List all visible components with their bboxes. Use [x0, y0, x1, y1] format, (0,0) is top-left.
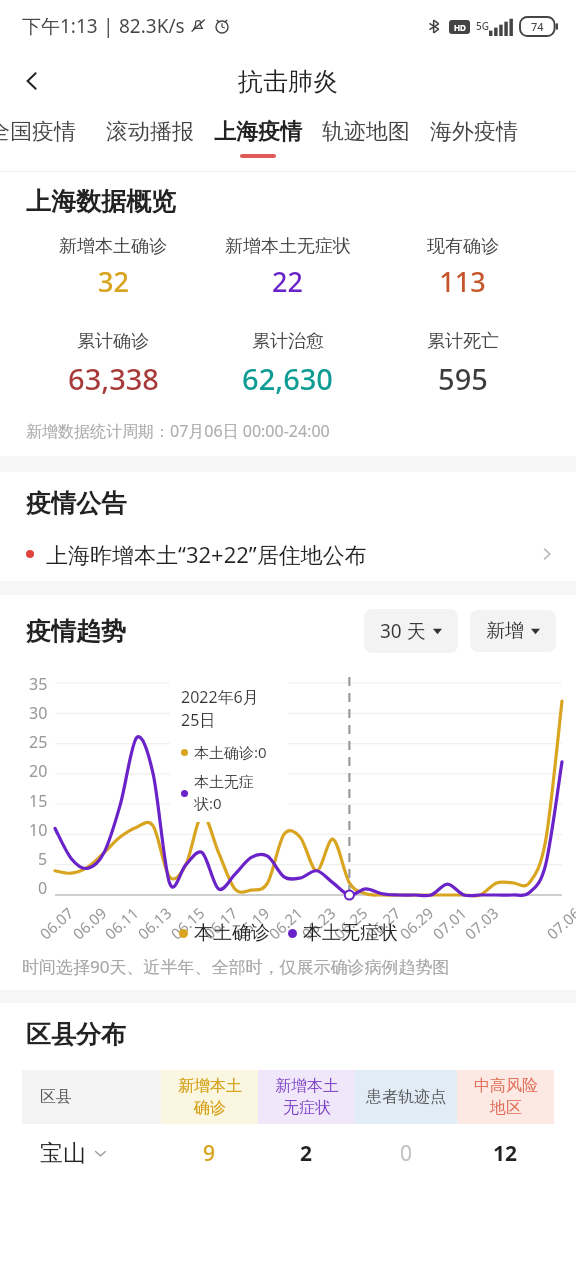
- staticText: 06.09: [68, 902, 111, 943]
- staticText: 上海数据概览: [26, 186, 176, 217]
- button[interactable]: 新增: [470, 610, 556, 652]
- staticText: 0: [400, 1139, 413, 1168]
- staticText: 滚动播报: [106, 118, 194, 146]
- staticText: 25: [29, 731, 48, 753]
- staticText: 30: [29, 702, 48, 724]
- staticText: 06.19: [231, 902, 274, 943]
- staticText: 时间选择90天、近半年、全部时，仅展示确诊病例趋势图: [22, 955, 450, 978]
- staticText: 06.29: [395, 902, 438, 943]
- staticText: 新增本土无症状: [225, 235, 351, 258]
- staticText: 确诊: [194, 1098, 226, 1118]
- staticText: 宝山: [40, 1139, 86, 1168]
- staticText: 5: [38, 848, 48, 870]
- staticText: 06.27: [362, 902, 405, 943]
- staticText: 12: [493, 1139, 518, 1168]
- staticText: 0: [38, 877, 48, 899]
- staticText: 全国疫情: [0, 118, 76, 146]
- staticText: 35: [29, 673, 48, 695]
- staticText: 区县分布: [26, 1019, 126, 1050]
- staticText: 海外疫情: [430, 118, 518, 146]
- staticText: 累计治愈: [252, 330, 324, 353]
- staticText: 疫情趋势: [26, 616, 126, 647]
- staticText: 20: [29, 760, 48, 782]
- staticText: 06.21: [264, 902, 307, 943]
- staticText: 轨迹地图: [322, 118, 410, 146]
- button[interactable]: 海外疫情: [428, 118, 520, 154]
- staticText: 30 天: [380, 618, 426, 644]
- staticText: 患者轨迹点: [366, 1087, 446, 1107]
- staticText: 本土确诊:0: [194, 742, 267, 762]
- staticText: 下午1:13: [22, 13, 98, 39]
- staticText: 2: [300, 1139, 313, 1168]
- staticText: 06.07: [35, 902, 78, 943]
- staticText: 本土确诊: [194, 921, 270, 945]
- staticText: 本土无症状: [303, 921, 398, 945]
- staticText: 06.25: [329, 902, 372, 943]
- staticText: 区县: [40, 1087, 72, 1107]
- staticText: 07.06: [542, 902, 576, 943]
- staticText: |: [98, 13, 119, 39]
- staticText: 新增本土: [178, 1076, 242, 1096]
- staticText: 无症状: [283, 1098, 331, 1118]
- staticText: 32: [98, 263, 129, 300]
- staticText: 疫情公告: [26, 488, 126, 519]
- staticText: 63,338: [68, 359, 159, 398]
- staticText: 74: [531, 19, 544, 34]
- staticText: 2022年6月25日: [181, 686, 277, 731]
- button[interactable]: 上海昨增本土“32+22”居住地公布: [26, 533, 576, 581]
- staticText: 06.23: [297, 902, 340, 943]
- staticText: 现有确诊: [427, 235, 499, 258]
- staticText: 累计确诊: [77, 330, 149, 353]
- staticText: 上海疫情: [214, 118, 302, 146]
- staticText: 上海昨增本土“32+22”居住地公布: [46, 539, 367, 569]
- button[interactable]: 上海疫情: [212, 118, 304, 158]
- staticText: 07.01: [428, 902, 471, 943]
- button[interactable]: 轨迹地图: [320, 118, 412, 154]
- staticText: 113: [439, 263, 486, 300]
- staticText: 5G: [476, 19, 489, 33]
- staticText: 中高风险: [474, 1076, 538, 1096]
- button[interactable]: 30 天: [364, 609, 458, 653]
- staticText: 新增: [486, 619, 524, 643]
- staticText: 22: [272, 263, 303, 300]
- staticText: 62,630: [242, 359, 333, 398]
- staticText: 累计死亡: [427, 330, 499, 353]
- staticText: 新增本土确诊: [59, 235, 167, 258]
- staticText: 06.17: [199, 902, 242, 943]
- staticText: HD: [454, 22, 466, 33]
- staticText: 新增本土: [275, 1076, 339, 1096]
- staticText: 新增数据统计周期：07月06日 00:00-24:00: [26, 420, 330, 442]
- button[interactable]: 宝山: [22, 1124, 554, 1182]
- staticText: 06.15: [166, 902, 209, 943]
- staticText: 抗击肺炎: [238, 66, 338, 97]
- staticText: 15: [29, 790, 48, 812]
- staticText: 地区: [490, 1098, 522, 1118]
- staticText: 06.11: [100, 902, 143, 943]
- staticText: 本土无症状:0: [194, 773, 277, 813]
- button[interactable]: 全国疫情: [0, 118, 78, 154]
- staticText: 10: [29, 819, 48, 841]
- staticText: 06.13: [133, 902, 176, 943]
- staticText: 595: [438, 359, 488, 398]
- staticText: 9: [203, 1139, 216, 1168]
- button[interactable]: 滚动播报: [104, 118, 196, 154]
- button[interactable]: Back: [8, 57, 56, 105]
- staticText: 82.3K/s: [119, 13, 185, 39]
- staticText: 07.03: [460, 902, 503, 943]
